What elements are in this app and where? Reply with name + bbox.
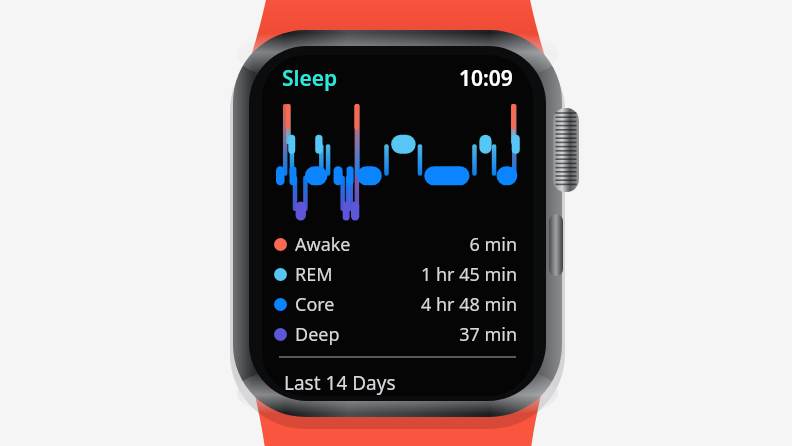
staticText: Sleep: [282, 64, 338, 93]
staticText: 1 hr 45 min: [420, 262, 517, 287]
other: Digital Crown: [0, 0, 792, 446]
staticText: 6 min: [469, 232, 517, 257]
staticText: Last 14 Days: [284, 370, 396, 396]
button[interactable]: [262, 97, 533, 223]
staticText: Deep: [295, 322, 340, 347]
staticText: 37 min: [459, 322, 517, 347]
button[interactable]: Deep: [262, 319, 533, 349]
staticText: REM: [295, 262, 333, 287]
button[interactable]: Core: [262, 289, 533, 319]
staticText: Awake: [295, 232, 351, 257]
button[interactable]: Last 14 Days: [262, 370, 533, 396]
button[interactable]: REM: [262, 259, 533, 289]
button[interactable]: Awake: [262, 229, 533, 259]
staticText: Core: [295, 292, 335, 317]
staticText: 4 hr 48 min: [420, 292, 517, 317]
staticText: 10:09: [459, 64, 513, 93]
